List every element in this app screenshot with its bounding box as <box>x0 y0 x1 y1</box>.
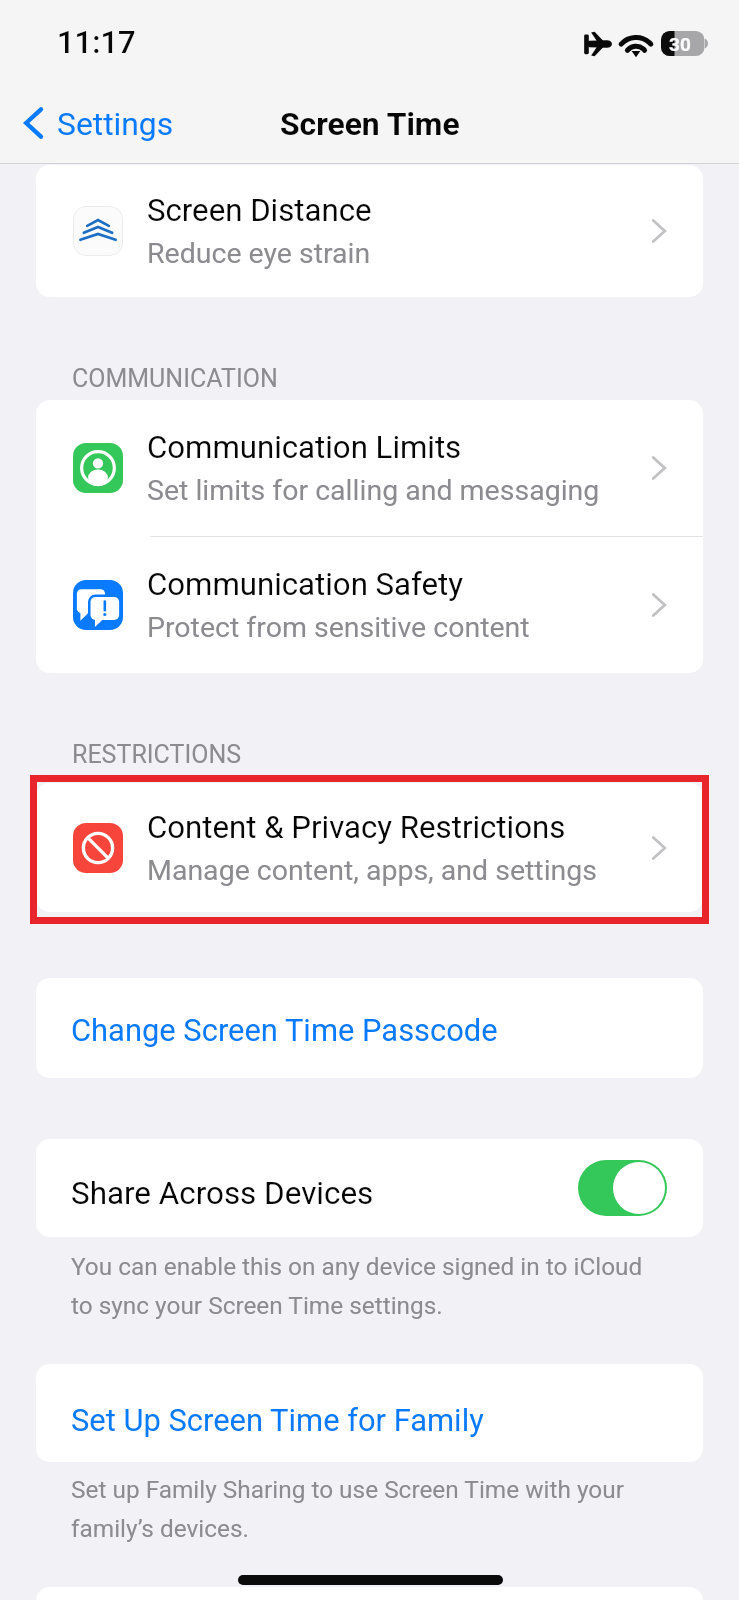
staticText: Screen Time <box>280 105 460 142</box>
button[interactable]: Communication Safety <box>36 537 703 673</box>
button[interactable]: Back <box>20 100 174 146</box>
staticText: Set up Family Sharing to use Screen Time… <box>71 1475 654 1543</box>
other: Back <box>20 104 48 142</box>
staticText: Content & Privacy Restrictions <box>147 809 566 846</box>
staticText: Set limits for calling and messaging <box>147 474 600 507</box>
staticText: Communication Limits <box>147 429 462 466</box>
staticText: Manage content, apps, and settings <box>147 854 598 887</box>
button[interactable]: Set Up Screen Time for Family <box>36 1364 703 1462</box>
staticText: COMMUNICATION <box>72 364 278 393</box>
button[interactable]: Communication Limits <box>36 400 703 536</box>
staticText: RESTRICTIONS <box>72 740 242 769</box>
staticText: 11:17 <box>57 24 136 60</box>
staticText: 30 <box>669 33 691 55</box>
other: Share Across Devices toggle <box>578 1160 667 1216</box>
staticText: Reduce eye strain <box>147 237 371 270</box>
staticText: Communication Safety <box>147 566 464 603</box>
button[interactable]: Change Screen Time Passcode <box>36 978 703 1078</box>
staticText: You can enable this on any device signed… <box>71 1252 654 1320</box>
staticText: Set Up Screen Time for Family <box>71 1402 484 1438</box>
staticText: Change Screen Time Passcode <box>71 1012 498 1048</box>
staticText: Screen Distance <box>147 192 372 229</box>
staticText: Protect from sensitive content <box>147 611 530 644</box>
staticText: Settings <box>57 105 174 142</box>
button[interactable]: Content & Privacy Restrictions <box>36 783 703 912</box>
button[interactable]: Screen Distance <box>36 165 703 297</box>
button[interactable]: Share Across Devices <box>36 1139 703 1237</box>
staticText: Share Across Devices <box>71 1175 578 1212</box>
